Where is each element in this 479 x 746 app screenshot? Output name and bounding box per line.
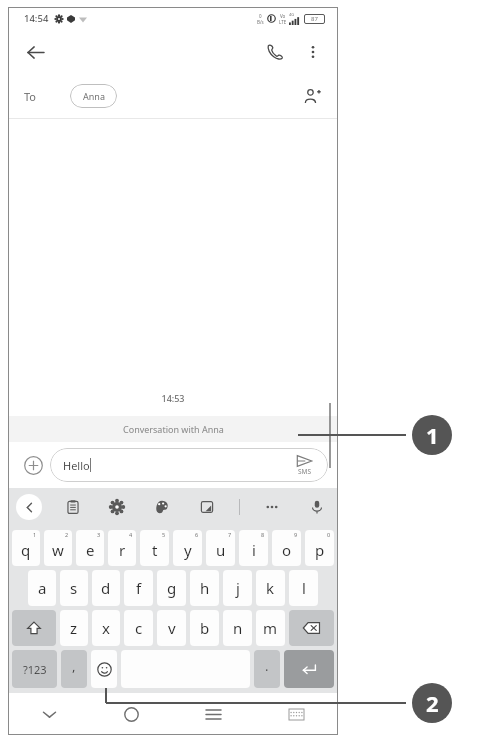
button[interactable]: Shift [12,610,56,646]
staticText: t [152,540,158,560]
staticText: p [315,540,325,560]
staticText: a [38,578,47,598]
staticText: 4G [289,12,295,17]
staticText: x [102,618,110,638]
staticText: 1 [33,531,37,538]
button[interactable]: 0 [305,530,334,566]
button[interactable]: Clipboard [60,494,86,520]
button[interactable]: n [223,610,252,646]
staticText: m [263,618,278,638]
button[interactable]: Call [258,35,292,69]
button[interactable]: Switch keyboard [255,693,338,735]
button[interactable]: j [223,570,252,606]
staticText: 1 [426,420,439,450]
button[interactable]: h [190,570,219,606]
button[interactable]: Hide keyboard [8,693,90,735]
staticText: 9 [294,531,298,538]
button[interactable]: 7 [206,530,235,566]
button[interactable]: c [124,610,153,646]
button[interactable]: Voice input [304,494,330,520]
button[interactable]: Recents [172,693,255,735]
button[interactable]: 4 [108,530,136,566]
button[interactable]: 5 [140,530,169,566]
button[interactable]: b [190,610,219,646]
staticText: SMS [298,467,312,476]
button[interactable]: More [259,494,285,520]
button[interactable]: . [254,650,280,688]
staticText: f [136,578,142,598]
staticText: 2 [426,688,439,718]
staticText: 4 [129,531,133,538]
staticText: w [52,540,64,560]
staticText: g [167,578,177,598]
staticText: j [236,578,240,598]
button[interactable]: v [157,610,186,646]
staticText: LTE [279,19,287,25]
staticText: 14:53 [8,392,338,404]
button[interactable]: 6 [173,530,202,566]
staticText: 7 [228,531,232,538]
button[interactable]: f [124,570,153,606]
staticText: Hello [63,458,90,473]
button[interactable]: g [157,570,186,606]
staticText: 87 [311,15,318,23]
staticText: q [21,540,31,560]
button[interactable]: Previous [16,494,42,520]
staticText: o [282,540,292,560]
button[interactable]: Back [18,35,52,69]
button[interactable]: Backspace [289,610,334,646]
staticText: e [86,540,95,560]
button[interactable]: Home [90,693,172,735]
staticText: b [200,618,210,638]
button[interactable]: z [60,610,88,646]
button[interactable]: 3 [76,530,104,566]
staticText: h [200,578,210,598]
staticText: 14:54 [24,12,49,25]
button[interactable]: Resize [194,494,220,520]
button[interactable]: Enter [284,650,334,688]
button[interactable]: l [289,570,318,606]
button[interactable]: Anna [70,84,117,108]
staticText: 5 [162,531,166,538]
button[interactable]: x [92,610,120,646]
button[interactable]: a [28,570,56,606]
button[interactable]: Send SMS [284,448,324,482]
button[interactable]: k [256,570,285,606]
staticText: 0 [259,13,262,19]
staticText: s [70,578,78,598]
staticText: 0 [327,531,331,538]
staticText: 6 [195,531,199,538]
button[interactable]: More options [296,35,330,69]
button[interactable]: ?123 [12,650,57,688]
button[interactable]: Theme [149,494,175,520]
staticText: l [302,578,306,598]
button[interactable]: 9 [272,530,301,566]
staticText: Conversation with Anna [123,423,224,435]
button[interactable]: Settings [104,494,130,520]
staticText: ?123 [23,662,47,677]
staticText: d [101,578,111,598]
staticText: , [72,657,76,675]
button[interactable]: 1 [12,530,40,566]
button[interactable]: Hello [50,448,328,482]
staticText: Vo [280,13,286,19]
button[interactable]: m [256,610,285,646]
button[interactable]: Add recipient [296,80,328,112]
button[interactable]: d [92,570,120,606]
button[interactable]: 8 [239,530,268,566]
staticText: v [168,618,176,638]
staticText: B/s [257,19,264,25]
button[interactable]: , [61,650,87,688]
staticText: To [24,89,37,104]
staticText: Anna [83,90,105,102]
button[interactable]: Add attachment [18,450,48,480]
staticText: 3 [97,531,101,538]
button[interactable]: Emoji [91,650,117,688]
staticText: r [119,540,126,560]
staticText: 2 [65,531,69,538]
button[interactable]: 2 [44,530,72,566]
staticText: 8 [261,531,265,538]
staticText: . [265,657,269,675]
button[interactable]: s [60,570,88,606]
